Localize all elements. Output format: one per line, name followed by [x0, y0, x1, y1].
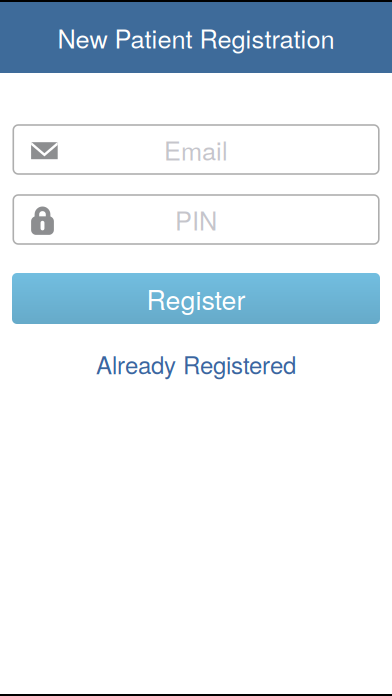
staticText: PIN: [175, 201, 217, 238]
button[interactable]: Register: [12, 273, 380, 324]
button[interactable]: Already Registered: [12, 344, 380, 384]
staticText: New Patient Registration: [57, 19, 334, 56]
staticText: Email: [164, 131, 228, 168]
staticText: Already Registered: [96, 347, 296, 381]
staticText: Register: [146, 279, 245, 318]
